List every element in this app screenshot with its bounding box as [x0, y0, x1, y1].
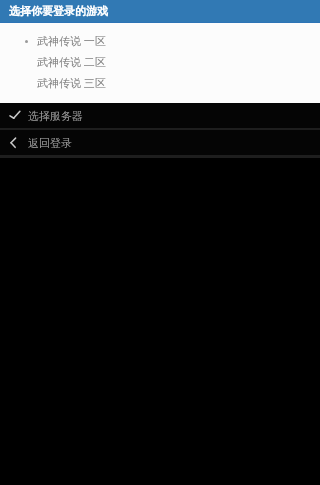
staticText: 选择你要登录的游戏 — [9, 4, 108, 18]
staticText: 武神传说 三区 — [37, 75, 106, 90]
button[interactable]: Choose server — [0, 103, 320, 128]
staticText: 返回登录 — [28, 136, 72, 150]
button[interactable]: Back to login — [0, 130, 320, 155]
staticText: 选择服务器 — [28, 109, 83, 123]
staticText: 武神传说 一区 — [37, 33, 106, 48]
button[interactable]: 武神传说 一区 — [0, 30, 320, 51]
button[interactable]: 武神传说 三区 — [0, 72, 320, 93]
staticText: 武神传说 二区 — [37, 54, 106, 69]
button[interactable]: 武神传说 二区 — [0, 51, 320, 72]
